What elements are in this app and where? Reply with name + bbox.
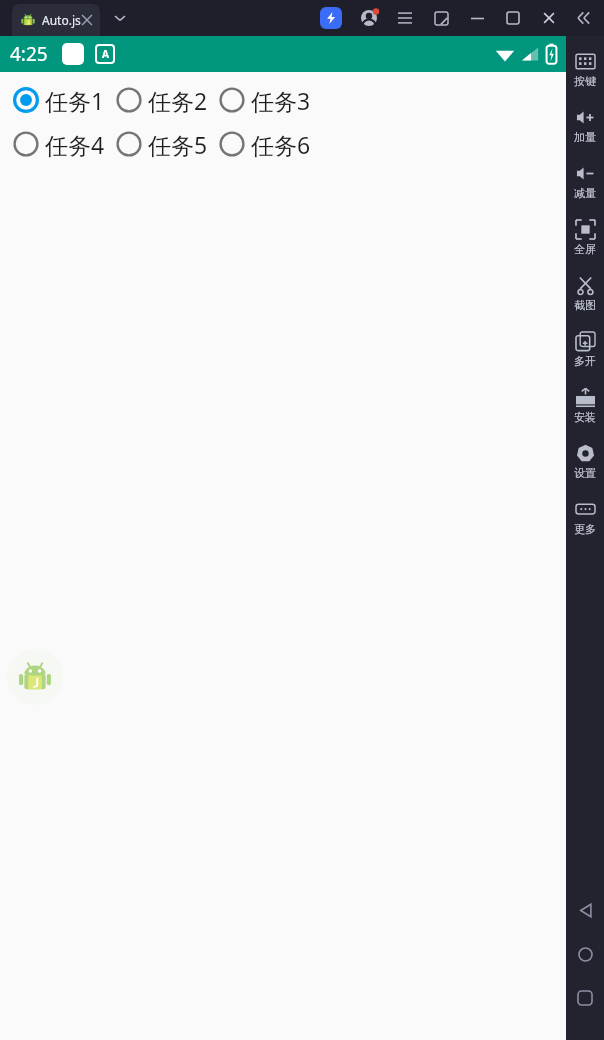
button[interactable]: Account (358, 7, 380, 29)
button[interactable]: 设置 (566, 434, 604, 490)
button[interactable]: Close (538, 7, 560, 29)
button[interactable]: Boost (320, 7, 342, 29)
staticText: 任务6 (251, 129, 311, 160)
staticText: 安装 (574, 410, 596, 424)
button[interactable]: Minimize (466, 7, 488, 29)
button[interactable]: Collapse sidebar (572, 7, 594, 29)
button[interactable]: 多开 (566, 322, 604, 378)
staticText: 多开 (574, 354, 596, 368)
staticText: 全屏 (574, 242, 596, 256)
button[interactable]: Close tab (80, 13, 94, 27)
button[interactable]: Auto.js (12, 4, 100, 36)
button[interactable]: 任务1 (8, 82, 109, 118)
button[interactable]: 任务3 (214, 82, 315, 118)
button[interactable]: Back (566, 888, 604, 932)
button[interactable]: 更多 (566, 490, 604, 546)
staticText: 任务3 (251, 85, 311, 116)
button[interactable]: 截图 (566, 266, 604, 322)
staticText: 4:25 (10, 41, 48, 67)
staticText: 任务2 (148, 85, 208, 116)
staticText: 按键 (574, 74, 596, 88)
button[interactable]: Menu (394, 7, 416, 29)
button[interactable]: 安装 (566, 378, 604, 434)
button[interactable]: 按键 (566, 42, 604, 98)
button[interactable]: Restore down (430, 7, 452, 29)
button[interactable]: 任务2 (111, 82, 212, 118)
button[interactable]: 减量 (566, 154, 604, 210)
staticText: Auto.js (42, 12, 81, 28)
staticText: 任务5 (148, 129, 208, 160)
button[interactable]: Tab list (110, 8, 130, 28)
button[interactable]: Recents (566, 976, 604, 1020)
staticText: 加量 (574, 130, 596, 144)
staticText: 任务1 (45, 85, 105, 116)
button[interactable]: Maximize (502, 7, 524, 29)
button[interactable]: 任务6 (214, 126, 315, 162)
staticText: 任务4 (45, 129, 105, 160)
staticText: 截图 (574, 298, 596, 312)
staticText: 减量 (574, 186, 596, 200)
button[interactable]: Home (566, 932, 604, 976)
button[interactable]: 全屏 (566, 210, 604, 266)
button[interactable]: 加量 (566, 98, 604, 154)
staticText: 设置 (574, 466, 596, 480)
staticText: 更多 (574, 522, 596, 536)
button[interactable]: 任务5 (111, 126, 212, 162)
staticText: A (102, 47, 109, 61)
button[interactable]: 任务4 (8, 126, 109, 162)
